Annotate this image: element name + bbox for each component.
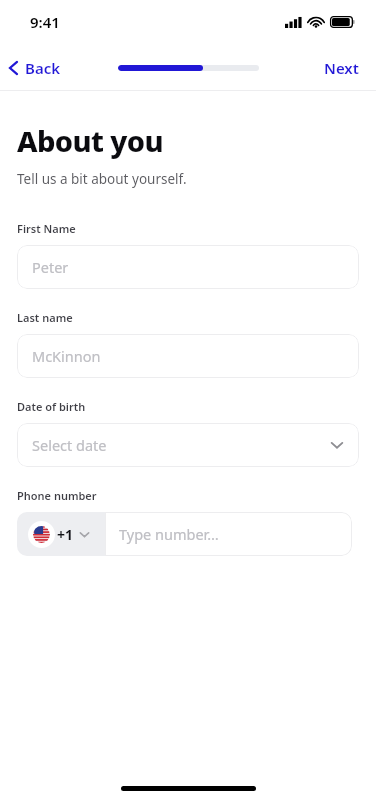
staticText: Date of birth	[17, 399, 86, 414]
staticText: 9:41	[30, 12, 60, 32]
button[interactable]: McKinnon	[17, 334, 359, 378]
staticText: Type number…	[119, 524, 219, 544]
button[interactable]: Back	[0, 51, 73, 85]
button[interactable]: Select date	[17, 423, 359, 467]
button[interactable]: Next	[307, 51, 376, 85]
staticText: +1	[57, 525, 74, 544]
staticText: Peter	[32, 257, 69, 277]
staticText: Next	[324, 58, 359, 78]
staticText: Tell us a bit about yourself.	[17, 170, 187, 188]
staticText: McKinnon	[32, 346, 101, 366]
staticText: Last name	[17, 310, 73, 325]
staticText: Back	[25, 58, 61, 78]
staticText: First Name	[17, 221, 76, 236]
staticText: About you	[17, 121, 163, 160]
staticText: Select date	[32, 435, 107, 455]
button[interactable]: Type number…	[105, 512, 352, 556]
button[interactable]: Peter	[17, 245, 359, 289]
staticText: Phone number	[17, 488, 97, 503]
button[interactable]: Select country calling code	[17, 512, 105, 556]
